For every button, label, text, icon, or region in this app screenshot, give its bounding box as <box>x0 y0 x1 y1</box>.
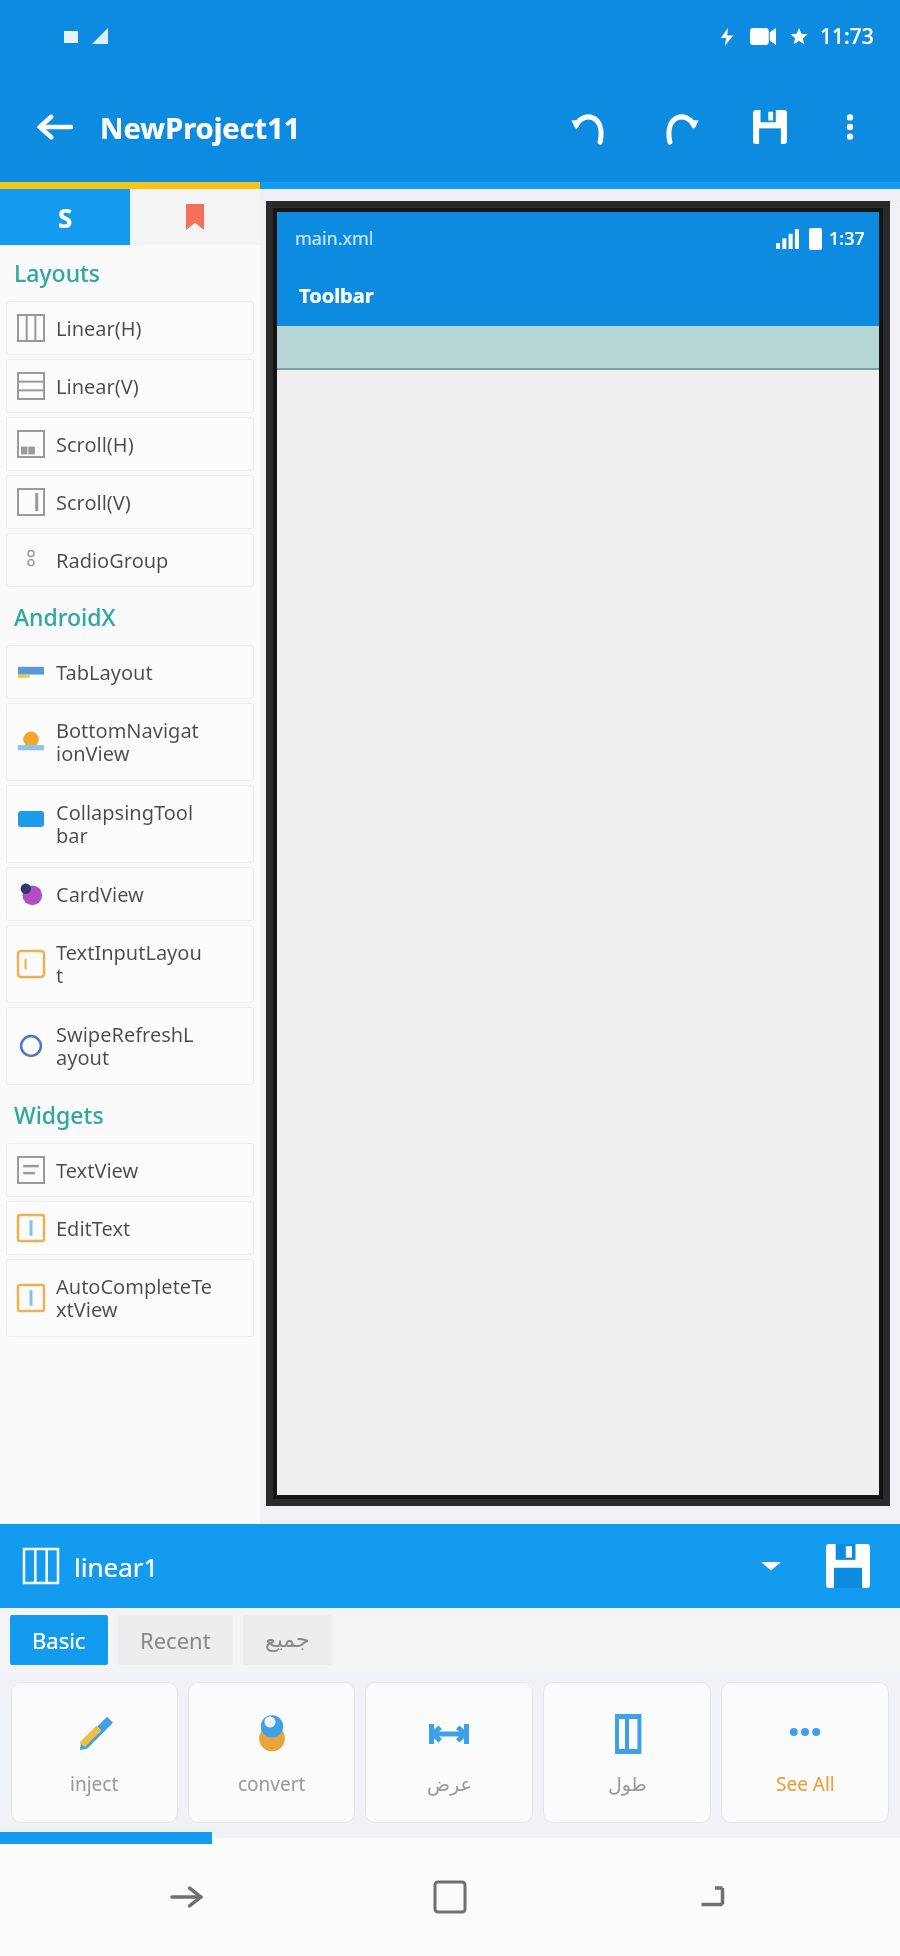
button[interactable]: Recents <box>674 1859 750 1935</box>
staticText: Widgets <box>14 1099 104 1130</box>
button[interactable]: Save layout <box>820 1538 876 1594</box>
button[interactable]: Undo <box>558 95 622 159</box>
staticText: AutoCompleteTe xtView <box>56 1273 213 1323</box>
button[interactable]: RadioGroup <box>6 533 254 587</box>
staticText: NewProject11 <box>100 108 301 147</box>
staticText: جميع <box>265 1627 310 1653</box>
button[interactable]: TabLayout <box>6 645 254 699</box>
button[interactable]: Palette <box>0 189 130 245</box>
staticText: Recent <box>140 1625 211 1655</box>
button[interactable]: Expand <box>746 1541 796 1591</box>
staticText: TabLayout <box>56 659 153 686</box>
staticText: طول <box>608 1773 647 1795</box>
staticText: @Walnut_team_plus <box>180 218 637 283</box>
staticText: convert <box>238 1771 306 1797</box>
staticText: CollapsingTool bar <box>56 799 194 849</box>
staticText: Linear(V) <box>56 373 139 400</box>
staticText: SwipeRefreshL ayout <box>56 1021 194 1071</box>
button[interactable]: CollapsingTool bar <box>6 785 254 863</box>
button[interactable]: inject <box>11 1682 178 1823</box>
staticText: EditText <box>56 1215 131 1242</box>
button[interactable]: CardView <box>6 867 254 921</box>
button[interactable]: جميع <box>265 1615 310 1665</box>
button[interactable]: Linear(V) <box>6 359 254 413</box>
button[interactable]: Scroll(V) <box>6 475 254 529</box>
staticText: Linear(H) <box>56 315 142 342</box>
button[interactable]: TextView <box>6 1143 254 1197</box>
button[interactable]: Scroll(H) <box>6 417 254 471</box>
staticText: 1:37 <box>829 226 865 251</box>
staticText: Layouts <box>14 257 101 288</box>
staticText: Scroll(H) <box>56 431 134 458</box>
staticText: TextInputLayou t <box>56 939 202 989</box>
button[interactable]: Back <box>150 1859 226 1935</box>
button[interactable]: TextInputLayou t <box>6 925 254 1003</box>
staticText: main.xml <box>295 226 374 251</box>
button[interactable]: Recent <box>140 1615 211 1665</box>
button[interactable]: طول <box>543 1682 711 1823</box>
staticText: Basic <box>32 1625 86 1655</box>
button[interactable]: عرض <box>365 1682 533 1823</box>
staticText: See All <box>776 1771 835 1797</box>
button[interactable]: EditText <box>6 1201 254 1255</box>
staticText: S <box>58 200 73 235</box>
staticText: CardView <box>56 881 144 908</box>
button[interactable]: Save <box>738 95 802 159</box>
staticText: TextView <box>56 1157 139 1184</box>
button[interactable]: Basic <box>32 1615 86 1665</box>
staticText: عرض <box>427 1773 472 1795</box>
button[interactable]: SwipeRefreshL ayout <box>6 1007 254 1085</box>
button[interactable]: AutoCompleteTe xtView <box>6 1259 254 1337</box>
staticText: 11:73 <box>820 22 874 51</box>
button[interactable]: Linear(H) <box>6 301 254 355</box>
button[interactable]: See All <box>721 1682 889 1823</box>
button[interactable]: Back <box>22 95 86 159</box>
staticText: RadioGroup <box>56 547 169 574</box>
button[interactable]: BottomNavigat ionView <box>6 703 254 781</box>
staticText: inject <box>70 1771 119 1797</box>
staticText: AndroidX <box>14 601 116 632</box>
staticText: BottomNavigat ionView <box>56 717 199 767</box>
button[interactable]: More options <box>822 99 878 155</box>
button[interactable]: Bookmarks <box>130 189 260 245</box>
button[interactable]: convert <box>188 1682 355 1823</box>
staticText: Toolbar <box>299 282 374 309</box>
button[interactable]: Home <box>412 1859 488 1935</box>
staticText: Scroll(V) <box>56 489 131 516</box>
button[interactable]: Redo <box>648 95 712 159</box>
staticText: linear1 <box>74 1549 159 1584</box>
